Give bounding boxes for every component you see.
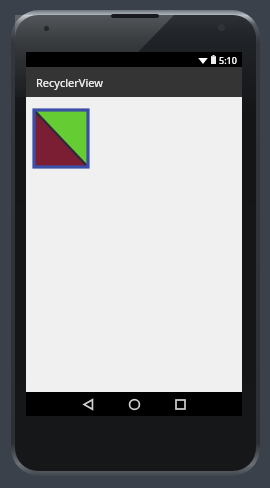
button[interactable]: Recent apps (157, 392, 203, 416)
staticText: RecyclerView (36, 75, 103, 90)
button[interactable]: Home (111, 392, 157, 416)
button[interactable]: RecyclerView (26, 67, 242, 97)
button[interactable]: Grid item (34, 110, 88, 167)
button[interactable]: Back (65, 392, 111, 416)
staticText: 5:10 (219, 54, 237, 66)
